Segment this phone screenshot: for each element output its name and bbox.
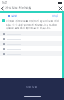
button[interactable] [0,36,62,41]
staticText: 이 앱은 개인정보를 수집하지 않으며 모든 데이터는 기기 내에 안전하게 저… [6,19,60,29]
button[interactable] [0,31,62,36]
staticText: 개인정보 처리방침 [5,6,32,10]
staticText: 설명 [11,14,17,18]
button[interactable] [0,51,62,56]
staticText: 진행 상황 [26,85,38,89]
staticText: 안내 [52,14,58,18]
button[interactable]: Back [0,6,5,11]
button[interactable] [0,41,62,46]
button[interactable] [0,46,62,51]
button[interactable]: Close [58,6,63,11]
staticText: 9:41 [2,1,8,5]
